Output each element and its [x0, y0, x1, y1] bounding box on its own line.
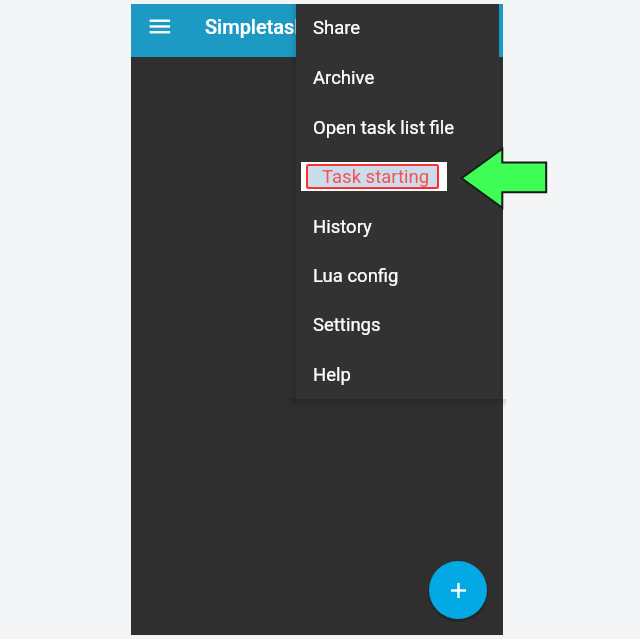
button[interactable]: History [296, 194, 499, 244]
button[interactable]: Add task [429, 561, 487, 619]
button[interactable]: Open navigation drawer [141, 8, 178, 45]
staticText: Open task list file [313, 117, 455, 139]
staticText: Lua config [313, 265, 399, 287]
button[interactable]: Task starting [296, 144, 499, 194]
staticText: Share [313, 17, 361, 39]
button[interactable]: Archive [296, 45, 499, 95]
button[interactable]: Open task list file [296, 95, 499, 145]
button[interactable]: Share [296, 0, 499, 45]
staticText: Simpletask [205, 15, 305, 38]
button[interactable]: Help [296, 342, 499, 392]
staticText: History [313, 216, 372, 238]
button[interactable]: Lua config [296, 243, 499, 293]
staticText: Task starting [322, 166, 430, 188]
staticText: Help [313, 364, 351, 386]
staticText: Archive [313, 67, 375, 89]
staticText: Settings [313, 314, 381, 336]
button[interactable]: Settings [296, 292, 499, 342]
